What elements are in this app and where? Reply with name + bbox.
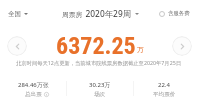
staticText: 22.4 (158, 81, 170, 89)
staticText: 284.46万张 (18, 81, 49, 89)
staticText: 含服务费 (168, 10, 190, 17)
staticText: 6372.25 (56, 32, 136, 56)
staticText: 总出票 (25, 91, 42, 98)
button[interactable]: Previous week (7, 36, 27, 56)
staticText: 万 (137, 46, 144, 54)
staticText: 30.23万 (89, 81, 111, 89)
button[interactable]: 22.4 (134, 74, 200, 104)
button[interactable]: 周票房 2020年29周 (59, 5, 142, 22)
button[interactable]: 284.46万张 (0, 74, 66, 104)
staticText: 周票房 2020年29周 (62, 8, 132, 19)
staticText: 平均票价 (153, 91, 176, 98)
button[interactable]: Next week (172, 36, 192, 56)
button[interactable]: 30.23万 (67, 74, 133, 104)
staticText: 北京时间每天12点更新，当前城市院线票房数据截止至2020年7月25日 (16, 59, 181, 66)
button[interactable]: 含服务费 (155, 7, 200, 20)
staticText: 全国 (8, 10, 21, 18)
button[interactable]: 全国 (0, 7, 32, 21)
staticText: 场次 (94, 91, 106, 98)
